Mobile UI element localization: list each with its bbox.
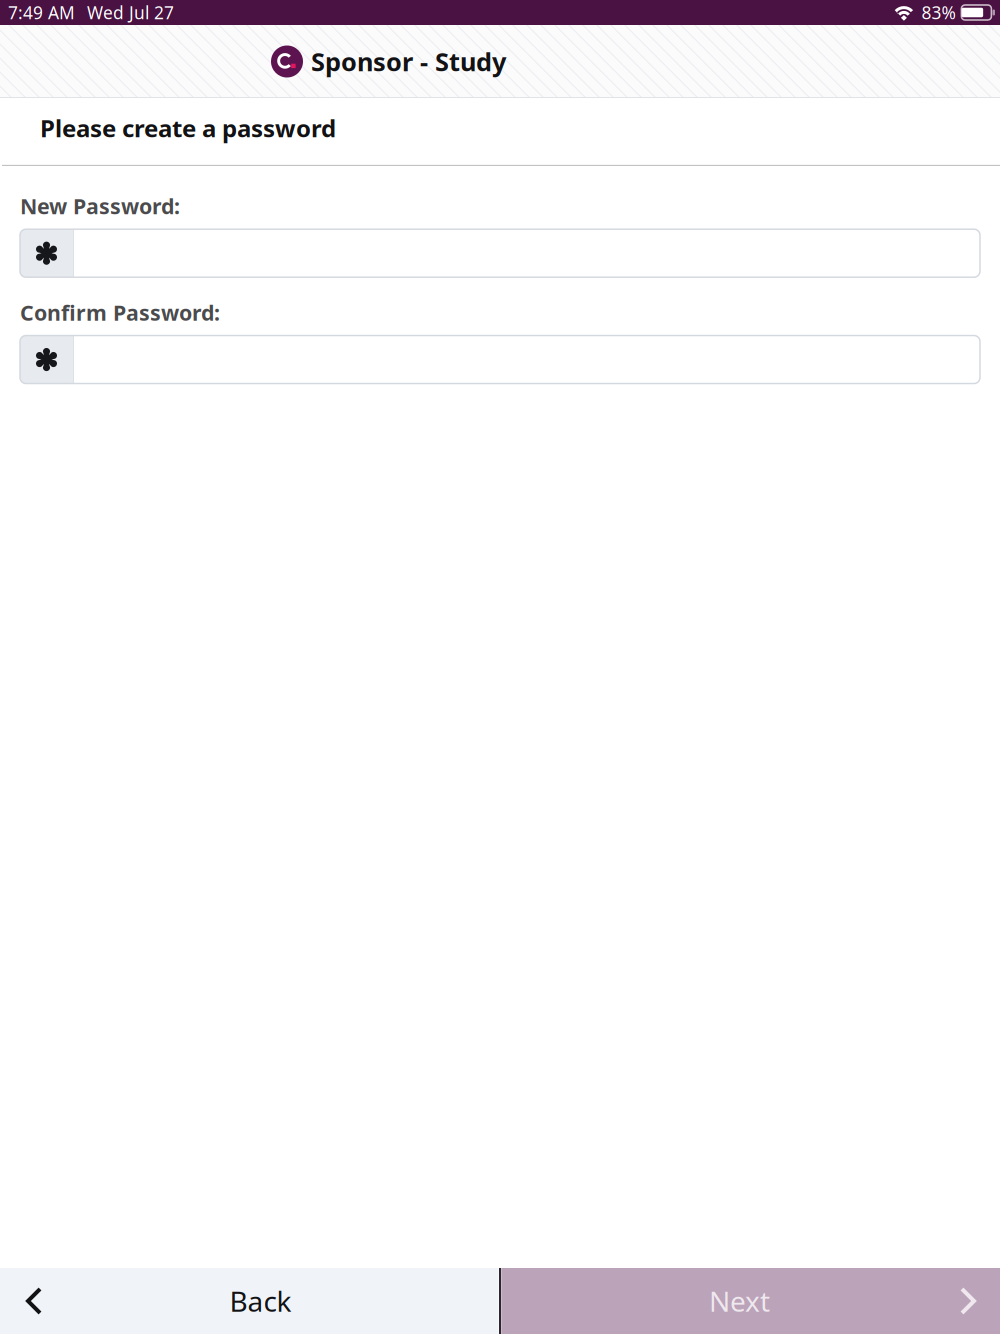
button[interactable]: Next [502,1268,1000,1334]
staticText: Sponsor - Study [311,45,506,78]
button[interactable]: Back [0,1268,498,1334]
staticText: Confirm Password: [20,298,220,326]
button[interactable]: Sponsor - Study [271,45,506,78]
staticText: Next [709,1282,770,1320]
staticText: Back [229,1282,291,1320]
button[interactable]: New Password: [20,229,980,277]
staticText: 83% [921,1,955,24]
staticText: Please create a password [40,112,336,144]
staticText: New Password: [20,192,180,220]
staticText: 7:49 AM [8,1,75,24]
staticText: Wed Jul 27 [87,1,174,24]
button[interactable]: Confirm Password: [20,335,980,383]
